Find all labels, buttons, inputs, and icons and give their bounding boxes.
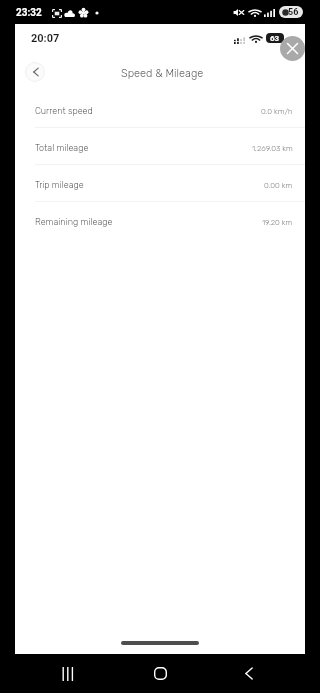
staticText: Current speed: [35, 106, 93, 117]
staticText: 0.0 km/h: [261, 107, 293, 116]
button[interactable]: Recent apps: [47, 654, 89, 693]
button[interactable]: Remaining mileage: [15, 202, 305, 238]
staticText: 20:07: [31, 32, 60, 45]
staticText: Speed & Mileage: [121, 67, 204, 80]
button[interactable]: Total mileage: [15, 128, 305, 165]
staticText: 19.20 km: [262, 218, 293, 227]
button[interactable]: Trip mileage: [15, 165, 305, 202]
button[interactable]: Home: [139, 654, 181, 693]
staticText: Remaining mileage: [35, 217, 113, 228]
staticText: 23:32: [16, 7, 42, 19]
staticText: 1,269.03 km: [252, 144, 293, 153]
button[interactable]: Back: [25, 62, 45, 82]
staticText: 0.00 km: [264, 181, 293, 190]
button[interactable]: Current speed: [15, 91, 305, 128]
staticText: 63: [270, 34, 280, 43]
staticText: 56: [288, 7, 299, 18]
staticText: Total mileage: [35, 143, 89, 154]
button[interactable]: Close: [280, 36, 305, 61]
button[interactable]: Back: [226, 654, 268, 693]
staticText: Trip mileage: [35, 180, 84, 191]
